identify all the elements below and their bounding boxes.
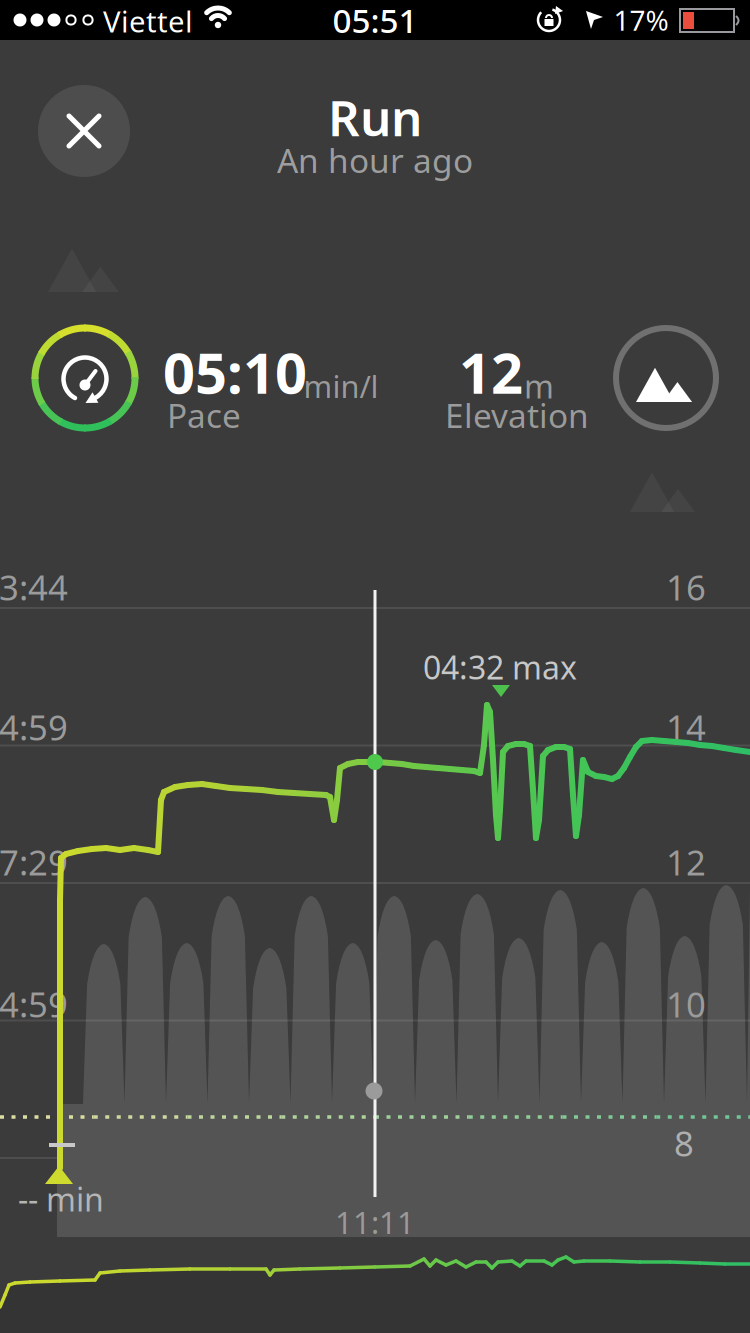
- staticText: 11:11: [335, 1202, 415, 1242]
- staticText: Run: [328, 84, 422, 150]
- staticText: m: [524, 365, 554, 407]
- staticText: 12: [459, 335, 523, 409]
- staticText: Elevation: [445, 393, 589, 437]
- staticText: 03:44: [0, 564, 68, 610]
- staticText: 07:29: [0, 839, 68, 885]
- staticText: 8: [674, 1120, 694, 1166]
- staticText: An hour ago: [277, 138, 473, 182]
- staticText: -- min: [18, 1178, 104, 1220]
- staticText: 04:59: [0, 704, 68, 750]
- staticText: min/l: [303, 366, 378, 406]
- staticText: 05:10: [163, 335, 307, 409]
- staticText: Viettel: [103, 1, 193, 40]
- staticText: 04:32 max: [423, 646, 577, 688]
- staticText: 17%: [613, 1, 668, 39]
- button[interactable]: Close: [38, 85, 130, 177]
- staticText: 12: [666, 839, 706, 885]
- staticText: Pace: [167, 393, 241, 437]
- staticText: 14:59: [0, 981, 68, 1027]
- staticText: 16: [666, 564, 706, 610]
- staticText: 14: [666, 704, 706, 750]
- staticText: 05:51: [332, 0, 417, 42]
- staticText: 10: [666, 981, 706, 1027]
